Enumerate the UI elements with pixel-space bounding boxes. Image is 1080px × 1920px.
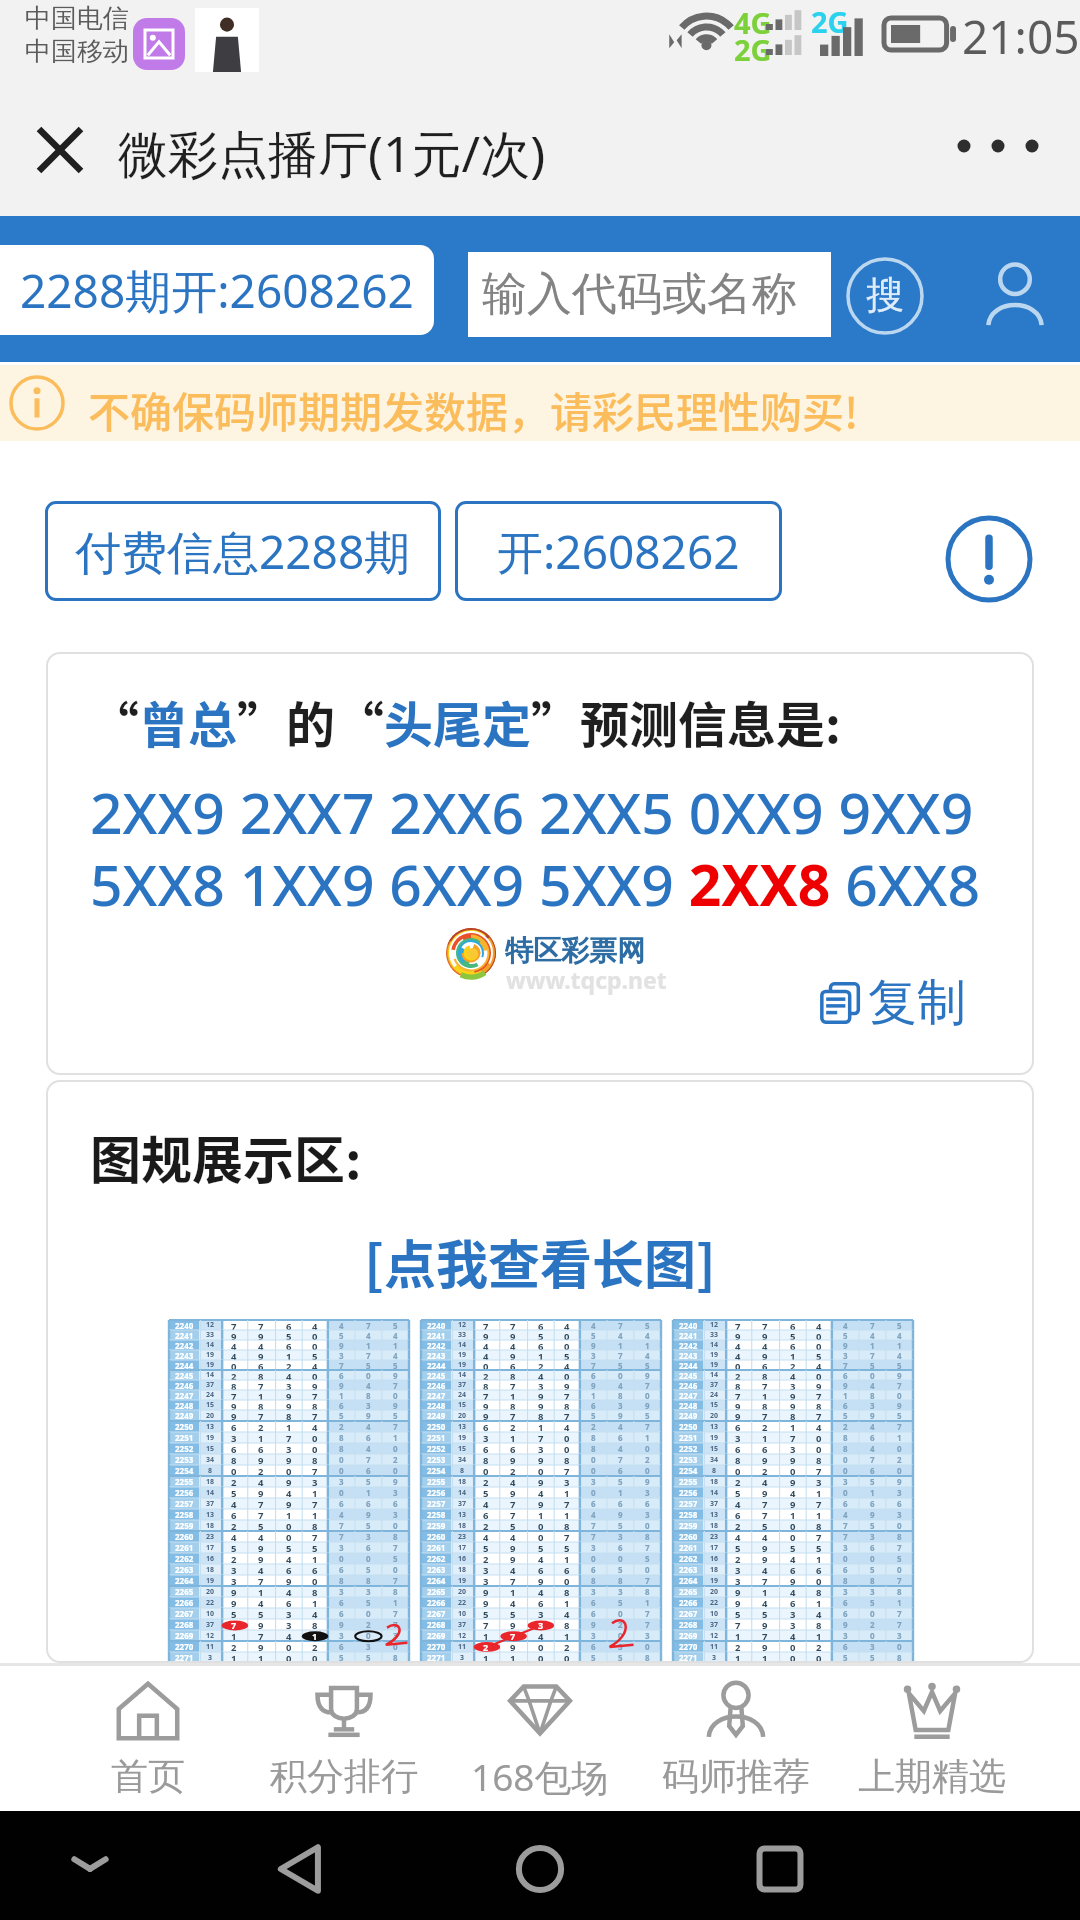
staticText: 1 [510, 1390, 516, 1400]
staticText: 0 [816, 1432, 822, 1443]
staticText: 2252 [175, 1443, 194, 1454]
staticText: 4 [366, 1443, 371, 1454]
staticText: 8 [510, 1400, 516, 1410]
staticText: 2245 [427, 1370, 446, 1380]
staticText: 0 [564, 1340, 570, 1350]
staticText: 14 [206, 1488, 215, 1498]
staticText: 2257 [175, 1498, 194, 1509]
staticText: 6 [483, 1443, 489, 1454]
staticText: 6 [816, 1564, 822, 1575]
button[interactable]: [点我查看长图] [46, 1224, 1034, 1299]
button[interactable]: Information [944, 514, 1034, 604]
staticText: 2261 [175, 1542, 194, 1553]
staticText: 中国电信 [25, 2, 129, 35]
staticText: 0 [538, 1531, 544, 1542]
staticText: 14 [710, 1340, 719, 1350]
staticText: 8 [816, 1454, 822, 1465]
button[interactable]: Chart image [421, 1320, 661, 1663]
staticText: 4G [734, 3, 772, 42]
staticText: 8 [591, 1443, 596, 1454]
button[interactable]: 首页 [50, 1666, 246, 1811]
staticText: 21:05 [962, 5, 1080, 68]
staticText: 2247 [175, 1390, 194, 1400]
staticText: 5 [645, 1320, 650, 1330]
staticText: 33 [458, 1330, 467, 1340]
staticText: 2 [645, 1454, 650, 1465]
staticText: 9 [286, 1390, 292, 1400]
staticText: 8 [897, 1531, 902, 1542]
staticText: 2261 [427, 1542, 446, 1553]
button[interactable]: More options [955, 129, 1051, 163]
staticText: 9 [231, 1400, 237, 1410]
button[interactable]: Chart image [169, 1320, 409, 1663]
staticText: 7 [510, 1498, 516, 1509]
staticText: 2271 [679, 1652, 698, 1663]
staticText: 5 [366, 1360, 371, 1370]
staticText: 3 [790, 1443, 796, 1454]
staticText: 1 [393, 1432, 398, 1443]
staticText: 0 [339, 1454, 344, 1465]
staticText: 5 [483, 1542, 489, 1553]
staticText: 2246 [679, 1380, 698, 1390]
staticText: 3 [591, 1630, 596, 1641]
staticText: 6 [286, 1340, 292, 1350]
staticText: 6 [258, 1360, 264, 1370]
staticText: 7 [393, 1380, 398, 1390]
staticText: 8 [591, 1432, 596, 1443]
staticText: 0 [790, 1465, 796, 1476]
staticText: 7 [816, 1531, 822, 1542]
staticText: 7 [735, 1390, 741, 1400]
staticText: 8 [312, 1400, 318, 1410]
button[interactable]: 积分排行 [246, 1666, 442, 1811]
staticText: 4 [735, 1498, 741, 1509]
staticText: 0 [591, 1454, 596, 1465]
staticText: 5 [286, 1542, 292, 1553]
staticText: 37 [206, 1620, 215, 1630]
staticText: 0 [231, 1360, 237, 1370]
button[interactable]: 上期精选 [834, 1666, 1030, 1811]
staticText: 6 [870, 1432, 875, 1443]
button[interactable]: Recent apps [748, 1837, 812, 1901]
button[interactable]: Chart image [673, 1320, 913, 1663]
staticText: 4 [790, 1586, 796, 1597]
staticText: 8 [339, 1575, 344, 1586]
staticText: 8 [735, 1454, 741, 1465]
staticText: 2254 [175, 1465, 194, 1476]
button[interactable]: 码师推荐 [638, 1666, 834, 1811]
staticText: 9 [258, 1553, 264, 1564]
staticText: 15 [458, 1444, 467, 1454]
staticText: 19 [458, 1350, 467, 1360]
staticText: 2265 [175, 1586, 194, 1597]
button[interactable]: Back [268, 1837, 332, 1901]
staticText: 9 [790, 1400, 796, 1410]
staticText: 23 [458, 1532, 467, 1542]
staticText: 5 [231, 1608, 237, 1619]
button[interactable]: Account [978, 257, 1052, 331]
button[interactable]: Home [508, 1837, 572, 1901]
button[interactable]: 复制 [818, 972, 966, 1034]
staticText: 5 [258, 1608, 264, 1619]
staticText: 7 [564, 1465, 570, 1476]
button[interactable]: 2288期开:2608262 [0, 245, 434, 335]
staticText: 复制 [868, 972, 966, 1034]
staticText: 4 [591, 1509, 596, 1520]
staticText: 2 [483, 1370, 489, 1380]
staticText: 2267 [427, 1608, 446, 1619]
button[interactable]: 168包场 [442, 1666, 638, 1811]
staticText: 3 [393, 1630, 398, 1641]
button[interactable]: Close [28, 118, 92, 182]
staticText: 9 [339, 1380, 344, 1390]
staticText: 2255 [175, 1476, 194, 1487]
staticText: 16 [458, 1554, 467, 1564]
button[interactable]: 付费信息2288期 [45, 501, 441, 601]
staticText: 4 [231, 1350, 237, 1360]
staticText: 3 [231, 1564, 237, 1575]
staticText: 1 [312, 1553, 318, 1564]
button[interactable]: 开:2608262 [455, 501, 782, 601]
staticText: 2263 [175, 1564, 194, 1575]
staticText: 5 [258, 1520, 264, 1531]
staticText: 4 [258, 1564, 264, 1575]
button[interactable]: 输入代码或名称 [468, 252, 831, 337]
button[interactable]: Search [845, 256, 925, 336]
staticText: 9 [645, 1400, 650, 1410]
